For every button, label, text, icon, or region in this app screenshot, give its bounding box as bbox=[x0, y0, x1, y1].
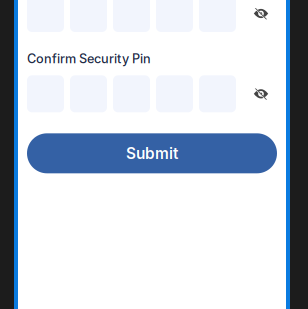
staticText: Confirm Security Pin bbox=[27, 51, 151, 66]
button[interactable]: Show PIN bbox=[248, 80, 277, 107]
button[interactable]: Submit bbox=[27, 133, 277, 173]
staticText: Submit bbox=[126, 144, 178, 163]
button[interactable]: Show PIN bbox=[248, 0, 277, 27]
